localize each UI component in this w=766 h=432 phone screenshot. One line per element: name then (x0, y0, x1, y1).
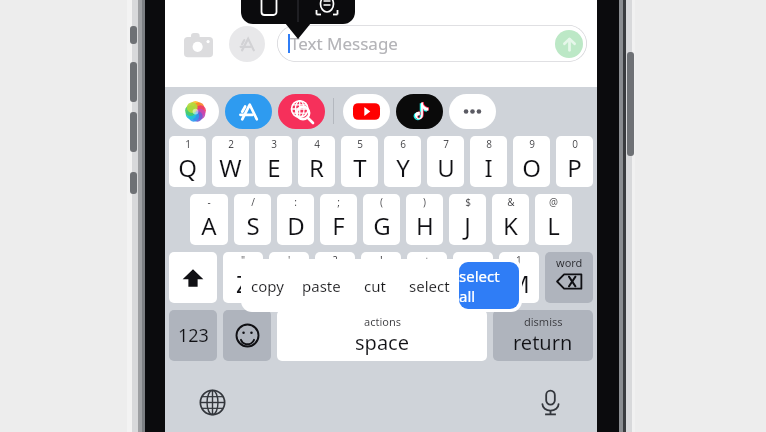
staticText: W (219, 151, 242, 184)
button[interactable]: 2 (212, 136, 249, 187)
button[interactable]: Shift (169, 252, 217, 303)
staticText: ' (288, 253, 291, 267)
staticText: D (287, 209, 305, 242)
staticText: cut (364, 276, 386, 296)
staticText: ; (337, 195, 340, 209)
staticText: return (513, 329, 573, 356)
button[interactable]: dismiss (493, 310, 593, 361)
button[interactable]: Search (278, 94, 325, 129)
staticText: 7 (443, 137, 449, 151)
staticText: $ (465, 195, 471, 209)
button[interactable]: Text Message (277, 25, 587, 62)
button[interactable]: App Store (229, 26, 265, 62)
button[interactable]: Change keyboard (192, 382, 232, 422)
button[interactable]: 5 (341, 136, 378, 187)
button[interactable]: ) (406, 194, 443, 245)
staticText: & (507, 195, 515, 209)
button[interactable]: select (402, 259, 456, 312)
staticText: U (437, 151, 455, 184)
staticText: ( (380, 195, 383, 209)
button[interactable]: 3 (255, 136, 292, 187)
button[interactable]: cut (348, 259, 402, 312)
button[interactable]: Emoji (223, 310, 271, 361)
staticText: Q (178, 151, 197, 184)
button[interactable]: 1 (499, 252, 539, 303)
staticText: I (484, 151, 493, 184)
staticText: 9 (529, 137, 535, 151)
staticText: H (416, 209, 434, 242)
button[interactable]: = (453, 252, 493, 303)
staticText: N (464, 267, 483, 300)
button[interactable]: 9 (513, 136, 550, 187)
button[interactable]: 7 (427, 136, 464, 187)
staticText: 8 (486, 137, 492, 151)
staticText: 1 (185, 137, 191, 151)
button[interactable]: ' (269, 252, 309, 303)
staticText: E (267, 151, 281, 184)
staticText: T (353, 151, 367, 184)
staticText: A (201, 209, 217, 242)
staticText: select (409, 276, 450, 296)
staticText: G (373, 209, 391, 242)
button[interactable]: App Store (225, 94, 272, 129)
button[interactable]: 1 (169, 136, 206, 187)
staticText: J (464, 209, 471, 242)
button[interactable]: Photos (172, 94, 219, 129)
button[interactable]: & (492, 194, 529, 245)
button[interactable]: $ (449, 194, 486, 245)
staticText: L (547, 209, 560, 242)
button[interactable]: @ (535, 194, 572, 245)
button[interactable]: / (234, 194, 271, 245)
staticText: K (503, 209, 518, 242)
staticText: M (508, 267, 530, 300)
staticText: ! (380, 253, 383, 267)
button[interactable]: More (449, 94, 496, 129)
button[interactable]: + (407, 252, 447, 303)
staticText: actions (364, 314, 401, 329)
staticText: Text Message (290, 32, 398, 55)
button[interactable]: Send (555, 30, 583, 58)
staticText: " (241, 253, 246, 267)
button[interactable]: 6 (384, 136, 421, 187)
button[interactable]: YouTube (343, 94, 390, 129)
button[interactable]: 4 (298, 136, 335, 187)
button[interactable]: : (277, 194, 314, 245)
staticText: 1 (516, 253, 522, 267)
staticText: 4 (314, 137, 320, 151)
staticText: paste (302, 276, 341, 296)
button[interactable]: Camera (179, 25, 217, 63)
staticText: = (470, 253, 476, 267)
button[interactable]: select all (459, 262, 519, 309)
staticText: 3 (271, 137, 277, 151)
staticText: 5 (357, 137, 363, 151)
staticText: ? (333, 253, 338, 267)
button[interactable]: Dictate (530, 382, 570, 422)
staticText: Z (236, 267, 250, 300)
staticText: : (294, 195, 297, 209)
staticText: X (282, 267, 297, 300)
staticText: + (424, 253, 430, 267)
button[interactable]: actions (277, 310, 487, 361)
button[interactable]: 123 (169, 310, 217, 361)
staticText: - (207, 195, 211, 209)
staticText: select all (459, 266, 519, 306)
button[interactable]: ( (363, 194, 400, 245)
staticText: O (522, 151, 541, 184)
button[interactable]: Delete (545, 252, 593, 303)
button[interactable]: 0 (556, 136, 593, 187)
staticText: C (327, 267, 343, 300)
button[interactable]: paste (294, 259, 348, 312)
staticText: space (355, 329, 409, 356)
button[interactable]: 8 (470, 136, 507, 187)
button[interactable]: ! (361, 252, 401, 303)
button[interactable]: ; (320, 194, 357, 245)
staticText: 6 (400, 137, 406, 151)
button[interactable]: copy (241, 259, 294, 312)
button[interactable]: ? (315, 252, 355, 303)
staticText: ) (423, 195, 426, 209)
staticText: / (251, 195, 255, 209)
button[interactable]: " (223, 252, 263, 303)
button[interactable]: - (190, 194, 228, 245)
staticText: B (419, 267, 435, 300)
button[interactable]: TikTok (396, 94, 443, 129)
